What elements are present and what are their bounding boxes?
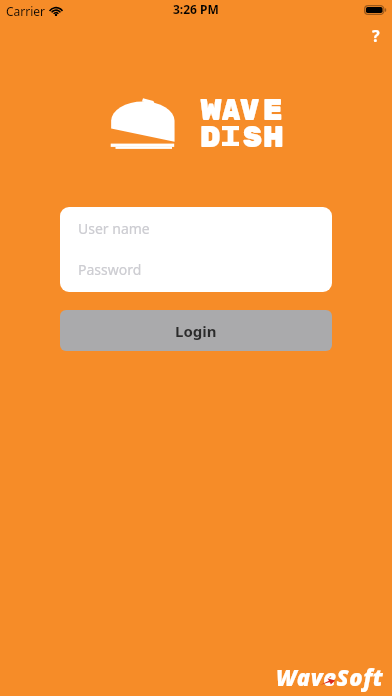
button[interactable]: Login (60, 310, 332, 351)
staticText: User name (78, 219, 150, 238)
button[interactable]: Help (361, 21, 391, 51)
staticText: 3:26 PM (173, 1, 219, 17)
staticText: ? (372, 25, 380, 47)
staticText: Login (175, 321, 217, 341)
staticText: V (240, 92, 259, 128)
staticText: Carrier (6, 3, 46, 19)
button[interactable]: Password (60, 246, 332, 292)
staticText: A (222, 92, 240, 128)
staticText: Password (78, 260, 142, 279)
staticText: H (263, 119, 284, 155)
staticText: W (200, 92, 222, 128)
staticText: E (263, 92, 283, 128)
button[interactable]: User name (60, 207, 332, 249)
staticText: S (243, 119, 262, 155)
staticText: WaveSoft (276, 662, 384, 692)
staticText: D (200, 119, 221, 155)
